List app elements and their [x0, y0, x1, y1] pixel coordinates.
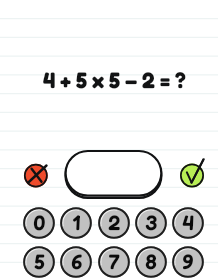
button[interactable]: [58, 205, 94, 241]
button[interactable]: Clear: [21, 159, 53, 191]
button[interactable]: [96, 205, 132, 241]
button[interactable]: [96, 244, 132, 280]
button[interactable]: Confirm: [177, 158, 211, 192]
button[interactable]: [21, 244, 57, 280]
button[interactable]: [170, 205, 206, 241]
button[interactable]: Answer field: [58, 144, 170, 204]
button[interactable]: [170, 244, 206, 280]
button[interactable]: [133, 244, 169, 280]
button[interactable]: [21, 205, 57, 241]
button[interactable]: [133, 205, 169, 241]
button[interactable]: [58, 244, 94, 280]
